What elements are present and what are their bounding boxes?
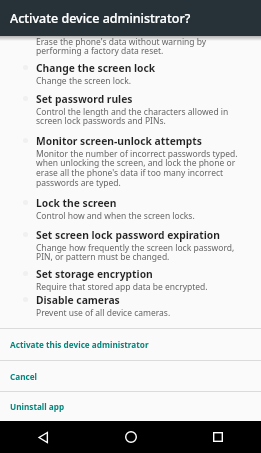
staticText: Require that stored app data be encrypte… [36, 281, 208, 293]
button[interactable]: Cancel [0, 361, 261, 391]
staticText: Activate this device administrator [10, 339, 149, 350]
staticText: Set storage encryption [36, 267, 153, 281]
staticText: Control how and when the screen locks. [36, 210, 195, 222]
button[interactable]: Activate this device administrator [0, 329, 261, 360]
button[interactable] [0, 421, 87, 453]
staticText: Set screen lock password expiration [36, 228, 220, 242]
staticText: Disable cameras [36, 293, 120, 307]
staticText: Change the screen lock. [36, 75, 131, 87]
staticText: Uninstall app [10, 401, 65, 412]
staticText: Set password rules [36, 92, 133, 106]
staticText: Erase the phone's data without warning b… [36, 36, 207, 57]
staticText: Cancel [10, 371, 38, 382]
staticText: Activate device administrator? [10, 10, 191, 27]
staticText: Prevent use of all device cameras. [36, 307, 171, 319]
staticText: Monitor the number of incorrect password… [36, 148, 238, 189]
staticText: Change how frequently the screen lock pa… [36, 242, 235, 263]
staticText: Lock the screen [36, 196, 117, 210]
button[interactable] [87, 421, 174, 453]
button[interactable] [174, 421, 261, 453]
staticText: Change the screen lock [36, 61, 156, 75]
staticText: Monitor screen-unlock attempts [36, 134, 202, 148]
button[interactable]: Uninstall app [0, 392, 261, 421]
staticText: Control the length and the characters al… [36, 106, 229, 127]
